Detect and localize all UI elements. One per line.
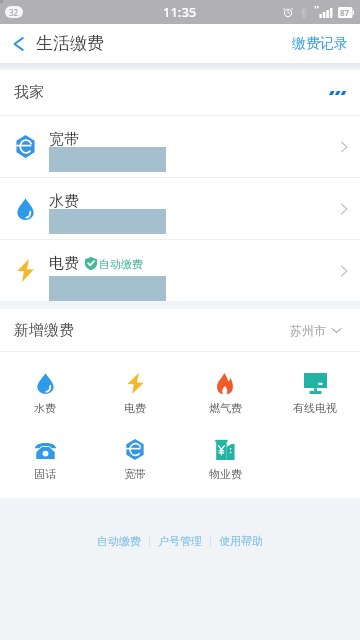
staticText: 电费	[124, 401, 146, 415]
button[interactable]: Back	[0, 33, 114, 54]
button[interactable]: 苏州市	[278, 315, 360, 346]
staticText: 生活缴费	[36, 33, 104, 54]
button[interactable]: 自动缴费	[89, 529, 149, 553]
button[interactable]: 电费	[90, 373, 180, 415]
button[interactable]: 水费	[0, 373, 90, 415]
staticText: 自动缴费	[99, 257, 143, 271]
staticText: 固话	[34, 467, 56, 481]
button[interactable]: 宽带	[0, 116, 360, 177]
staticText: 水费	[49, 192, 79, 211]
staticText: 电费	[49, 254, 79, 273]
staticText: 宽带	[49, 130, 79, 149]
button[interactable]: 水费	[0, 178, 360, 239]
staticText: 87	[340, 7, 350, 18]
button[interactable]: 电费	[0, 240, 360, 301]
staticText: 11:35	[163, 3, 197, 21]
button[interactable]: 物业费	[180, 439, 270, 481]
staticText: 新增缴费	[14, 321, 74, 340]
button[interactable]: 使用帮助	[211, 529, 271, 553]
staticText: 苏州市	[290, 323, 326, 338]
staticText: 物业费	[209, 467, 242, 481]
staticText: 有线电视	[293, 401, 337, 415]
staticText: 燃气费	[209, 401, 242, 415]
button[interactable]: 燃气费	[180, 373, 270, 415]
button[interactable]: More options	[316, 77, 360, 109]
button[interactable]: 有线电视	[270, 373, 360, 415]
staticText: 宽带	[124, 467, 146, 481]
button[interactable]: 缴费记录	[280, 27, 360, 61]
staticText: 32	[9, 7, 19, 18]
button[interactable]: 户号管理	[150, 529, 210, 553]
other: Back	[13, 36, 24, 52]
staticText: 我家	[14, 83, 44, 102]
staticText: 水费	[34, 401, 56, 415]
button[interactable]: 固话	[0, 439, 90, 481]
button[interactable]: 宽带	[90, 439, 180, 481]
